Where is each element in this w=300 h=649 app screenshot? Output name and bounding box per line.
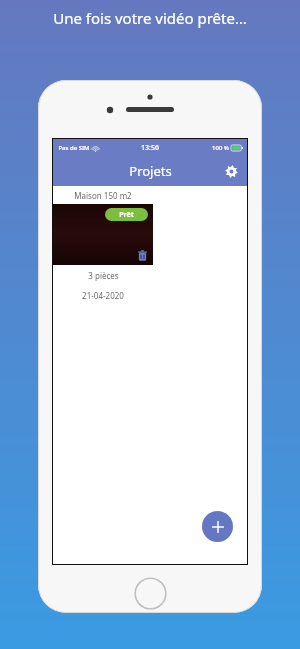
button[interactable]: Delete project — [135, 248, 149, 262]
staticText: 3 pièces — [88, 270, 119, 281]
button[interactable]: Maison 150 m2 — [53, 186, 153, 305]
button[interactable]: Settings — [221, 161, 241, 181]
staticText: Pas de SIM — [58, 144, 90, 152]
button[interactable]: Add project — [202, 511, 233, 542]
staticText: Une fois votre vidéo prête… — [53, 8, 247, 28]
staticText: 13:56 — [141, 143, 159, 153]
staticText: 21-04-2020 — [82, 290, 124, 301]
button[interactable]: Prêt — [105, 208, 148, 221]
button[interactable]: Home — [134, 577, 167, 610]
staticText: 100 % — [212, 144, 229, 152]
staticText: Maison 150 m2 — [74, 190, 132, 201]
staticText: Projets — [129, 162, 172, 180]
staticText: Prêt — [119, 210, 134, 220]
